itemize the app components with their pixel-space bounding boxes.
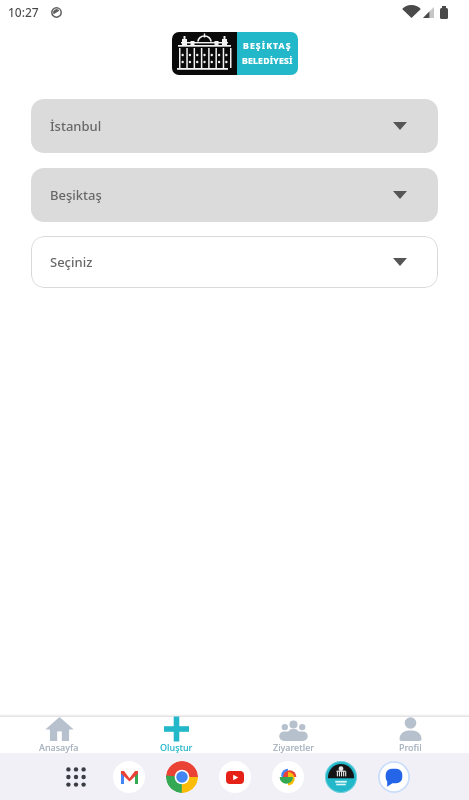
button[interactable]: Seçiniz — [31, 236, 438, 288]
staticText: İstanbul — [50, 117, 102, 135]
button[interactable]: Profil — [352, 717, 469, 753]
staticText: Anasayfa — [39, 741, 79, 753]
staticText: BELEDİYESİ — [242, 55, 293, 67]
button[interactable]: Anasayfa — [0, 717, 118, 753]
staticText: Ziyaretler — [273, 741, 315, 753]
button[interactable]: İstanbul — [31, 99, 438, 153]
button[interactable] — [272, 761, 304, 793]
button[interactable]: Ziyaretler — [235, 717, 352, 753]
staticText: 10:27 — [8, 4, 39, 20]
staticText: Seçiniz — [50, 253, 93, 271]
button[interactable] — [219, 761, 251, 793]
button[interactable]: Beşiktaş — [31, 168, 438, 222]
staticText: Profil — [399, 741, 422, 753]
button[interactable] — [378, 761, 410, 793]
button[interactable] — [325, 761, 357, 793]
button[interactable] — [113, 761, 145, 793]
staticText: BEŞİKTAŞ — [243, 40, 292, 52]
button[interactable] — [60, 761, 92, 793]
staticText: Beşiktaş — [50, 186, 102, 204]
button[interactable]: Oluştur — [118, 717, 235, 753]
button[interactable] — [166, 761, 198, 793]
staticText: Oluştur — [160, 741, 193, 753]
